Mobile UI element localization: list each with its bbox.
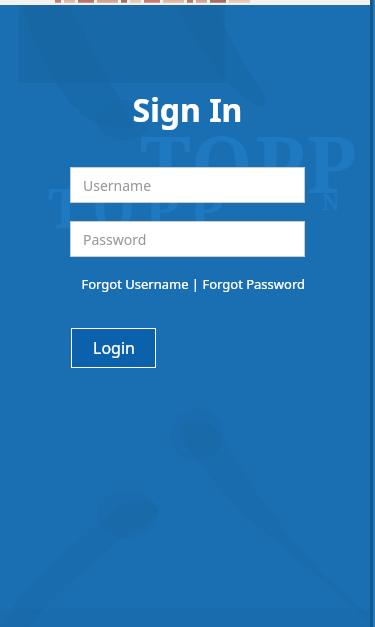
staticText: Username: [83, 176, 152, 195]
staticText: TOPP: [140, 110, 359, 216]
staticText: Sign In: [70, 88, 305, 132]
staticText: TOPP: [48, 170, 234, 244]
button[interactable]: Login: [71, 328, 156, 368]
button[interactable]: Forgot Username | Forgot Password: [70, 275, 305, 293]
button[interactable]: Password: [70, 221, 305, 257]
staticText: Login: [93, 337, 135, 359]
staticText: N: [322, 186, 340, 216]
button[interactable]: Username: [70, 167, 305, 203]
staticText: Password: [83, 230, 147, 249]
